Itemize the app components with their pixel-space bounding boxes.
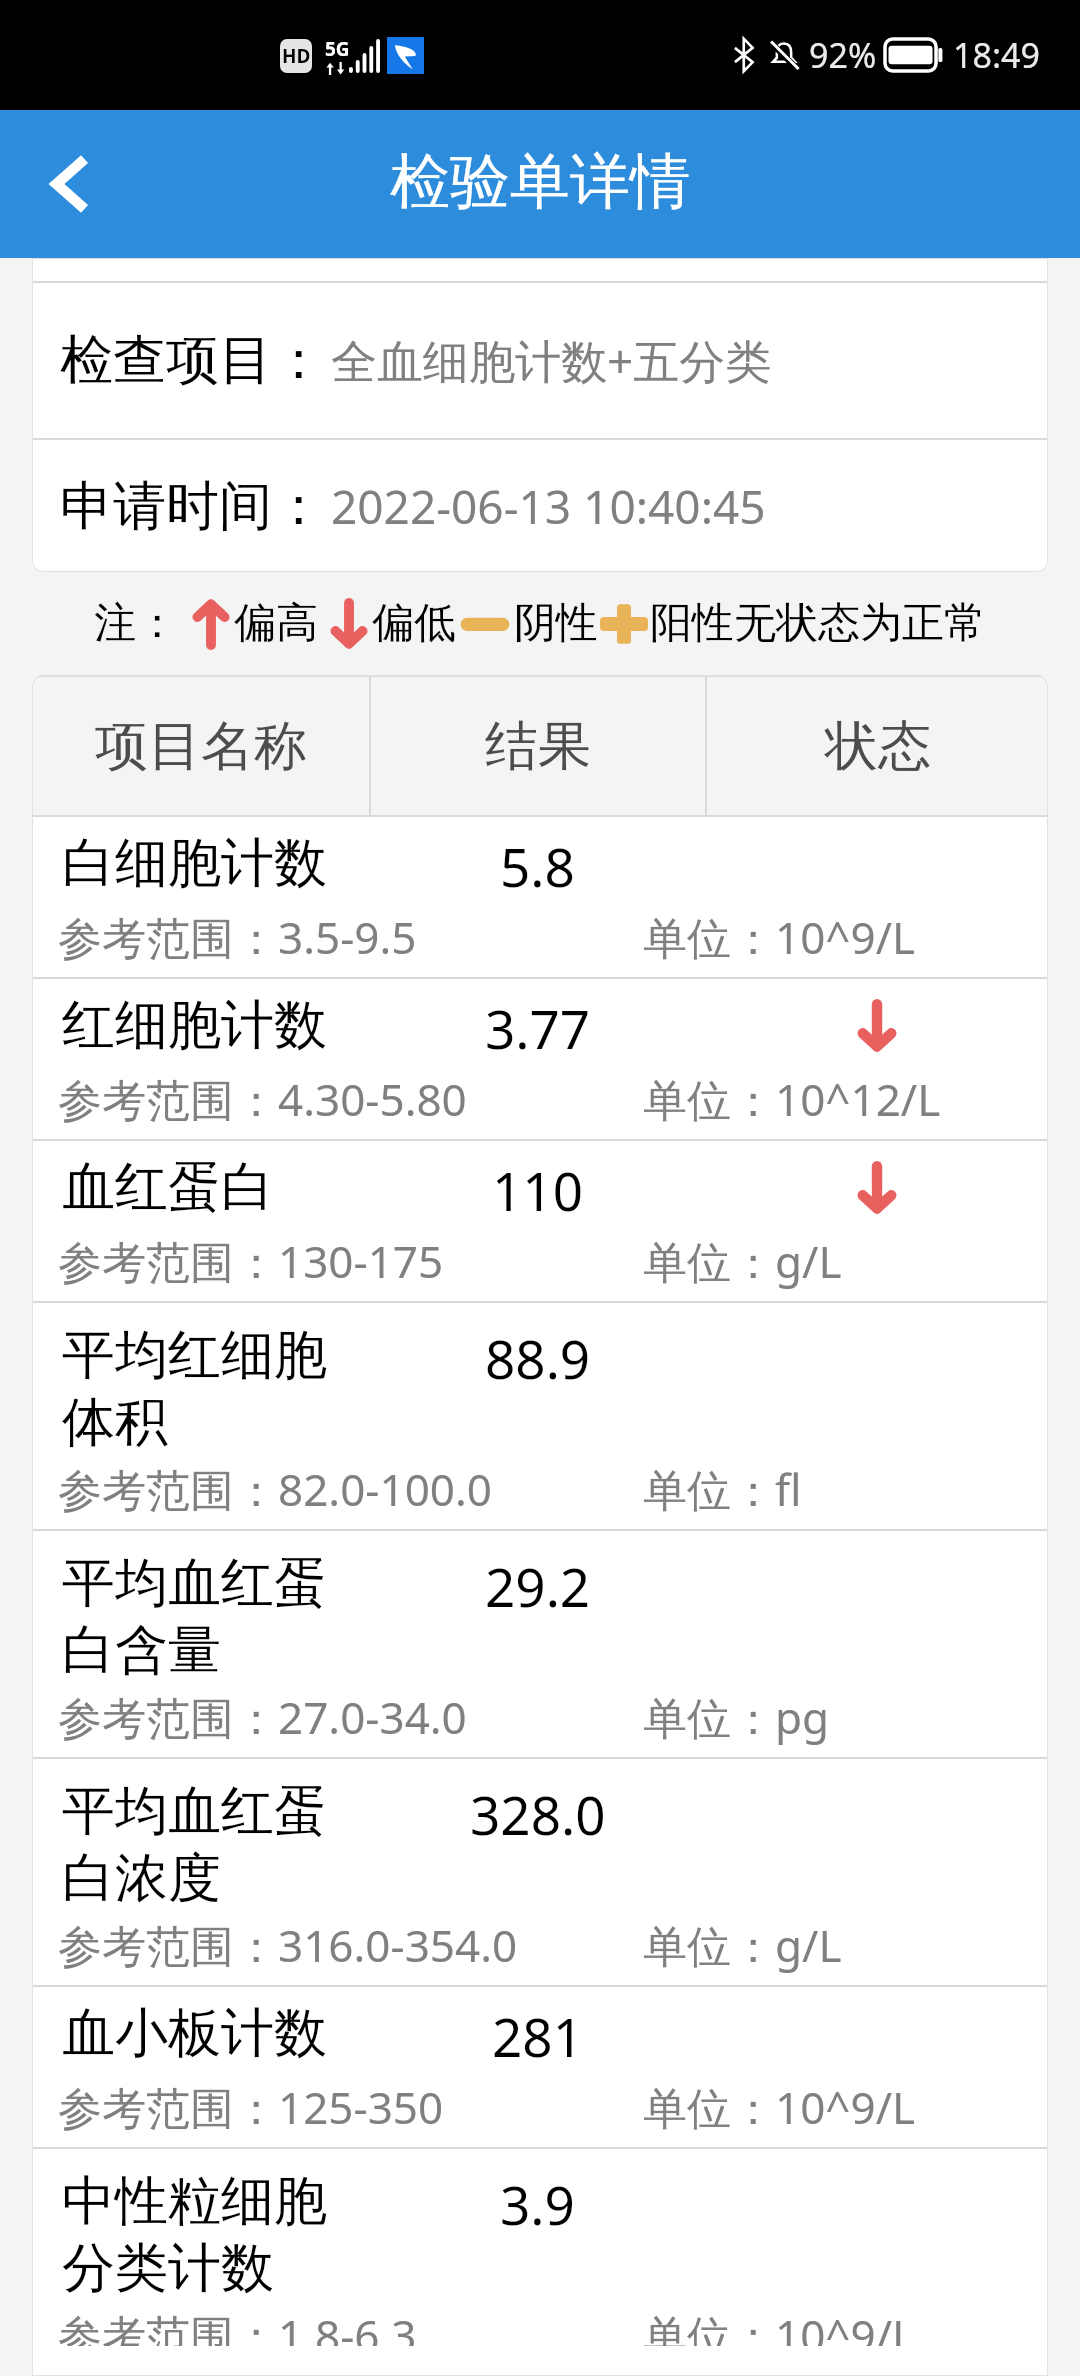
staticText: 血小板计数 (62, 2000, 327, 2067)
staticText: 单位：fl (643, 1459, 802, 1519)
staticText: 平均血红蛋 (62, 1550, 327, 1617)
staticText: HD (282, 43, 311, 69)
staticText: 结果 (485, 713, 591, 780)
button[interactable]: 平均血红蛋 (32, 1531, 1048, 1757)
staticText: 3.77 (485, 992, 591, 1064)
staticText: 白细胞计数 (62, 830, 327, 897)
staticText: 参考范围：4.30-5.80 (58, 1069, 467, 1129)
staticText: 参考范围：27.0-34.0 (58, 1687, 467, 1747)
staticText: 单位：10^9/L (643, 907, 916, 967)
button[interactable]: 申请时间： (32, 440, 1048, 572)
staticText: 申请时间： (60, 473, 325, 540)
staticText: 参考范围：82.0-100.0 (58, 1459, 492, 1519)
staticText: 体积 (62, 1389, 168, 1456)
staticText: 红细胞计数 (62, 992, 327, 1059)
staticText: 2022-06-13 10:40:45 (331, 475, 766, 538)
staticText: 参考范围：316.0-354.0 (58, 1915, 518, 1975)
staticText: 参考范围：125-350 (58, 2077, 444, 2137)
staticText: 92% (809, 32, 877, 78)
staticText: 328.0 (470, 1778, 606, 1850)
staticText: 白浓度 (62, 1845, 221, 1912)
button[interactable]: 检查项目： (32, 283, 1048, 438)
staticText: 检验单详情 (390, 144, 690, 220)
button[interactable]: Back (20, 134, 120, 234)
staticText: 阳性无状态为正常 (650, 597, 986, 650)
staticText: 单位：10^9/L (643, 2077, 916, 2137)
staticText: 全血细胞计数+五分类 (331, 329, 772, 392)
button[interactable]: 血小板计数 (32, 1987, 1048, 2147)
staticText: 状态 (825, 713, 931, 780)
staticText: 单位：10^9/L (643, 2305, 916, 2365)
staticText: 29.2 (485, 1550, 591, 1622)
staticText: 平均血红蛋 (62, 1778, 327, 1845)
staticText: 参考范围：1.8-6.3 (58, 2305, 417, 2365)
staticText: 110 (492, 1154, 583, 1226)
button[interactable]: 红细胞计数 (32, 979, 1048, 1139)
button[interactable]: 血红蛋白 (32, 1141, 1048, 1301)
staticText: 血红蛋白 (62, 1154, 274, 1221)
staticText: 偏高 (234, 597, 318, 650)
staticText: 281 (492, 2000, 583, 2072)
button[interactable]: 中性粒细胞 (32, 2149, 1048, 2375)
staticText: 单位：g/L (643, 1915, 842, 1975)
button[interactable]: 平均红细胞 (32, 1303, 1048, 1529)
staticText: 注： (94, 597, 178, 650)
staticText: 偏低 (372, 597, 456, 650)
staticText: 参考范围：130-175 (58, 1231, 444, 1291)
button[interactable]: 平均血红蛋 (32, 1759, 1048, 1985)
staticText: 分类计数 (62, 2235, 274, 2302)
staticText: 项目名称 (95, 713, 307, 780)
staticText: 平均红细胞 (62, 1322, 327, 1389)
staticText: 单位：10^12/L (643, 1069, 941, 1129)
staticText: 单位：g/L (643, 1231, 842, 1291)
staticText: 88.9 (485, 1322, 591, 1394)
staticText: 18:49 (953, 32, 1040, 78)
staticText: 中性粒细胞 (62, 2168, 327, 2235)
staticText: 5G (325, 36, 348, 62)
staticText: 5.8 (500, 830, 575, 902)
staticText: 参考范围：3.5-9.5 (58, 907, 417, 967)
staticText: 白含量 (62, 1617, 221, 1684)
staticText: 检查项目： (60, 327, 325, 394)
staticText: 单位：pg (643, 1687, 830, 1747)
button[interactable]: 白细胞计数 (32, 817, 1048, 977)
staticText: 3.9 (500, 2168, 575, 2240)
staticText: 阴性 (514, 597, 598, 650)
